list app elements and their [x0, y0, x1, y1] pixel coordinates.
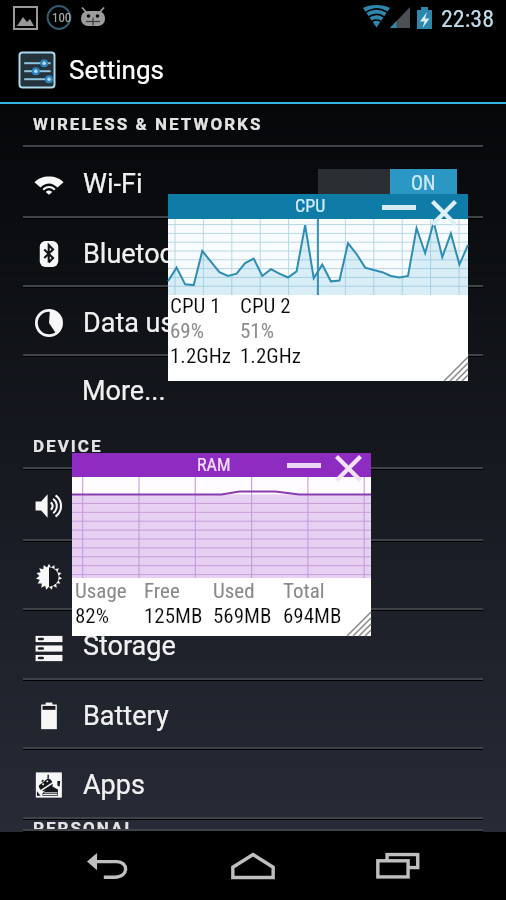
button[interactable]: Storage — [0, 611, 506, 681]
button[interactable]: Data usage — [0, 288, 506, 357]
button[interactable]: Close RAM monitor — [335, 455, 362, 482]
staticText: 694MB — [283, 604, 342, 629]
staticText: CPU 2 — [240, 294, 291, 319]
button[interactable]: Minimize RAM monitor — [287, 454, 321, 476]
staticText: Data usage — [83, 307, 219, 339]
staticText: CPU 1 — [170, 294, 221, 319]
staticText: WIRELESS & NETWORKS — [33, 114, 263, 134]
staticText: 1.2GHz — [240, 344, 301, 369]
staticText: 125MB — [144, 604, 203, 629]
staticText: 82% — [75, 604, 110, 629]
staticText: RAM — [197, 454, 231, 475]
button[interactable]: Close CPU monitor — [431, 200, 457, 226]
staticText: Sound — [83, 490, 160, 522]
staticText: 22:38 — [441, 5, 494, 33]
staticText: 1.2GHz — [170, 344, 231, 369]
staticText: Apps — [83, 769, 145, 801]
staticText: DEVICE — [33, 436, 103, 456]
staticText: Usage — [75, 579, 127, 604]
staticText: 100 — [52, 10, 72, 25]
button[interactable]: Back — [71, 832, 145, 900]
button[interactable]: More... — [0, 357, 506, 426]
button[interactable]: Apps — [0, 750, 506, 820]
staticText: Used — [213, 579, 255, 604]
button[interactable]: Wi-Fi — [0, 148, 506, 219]
staticText: Display — [83, 561, 171, 593]
staticText: ON — [411, 171, 436, 194]
staticText: Bluetooth — [83, 238, 199, 270]
staticText: PERSONAL — [33, 818, 136, 830]
staticText: Free — [144, 579, 180, 604]
button[interactable]: Display — [0, 542, 506, 611]
button[interactable]: Wi-Fi on — [318, 169, 457, 196]
staticText: Total — [283, 579, 325, 604]
staticText: More... — [82, 375, 166, 407]
staticText: Storage — [83, 630, 176, 662]
staticText: Settings — [69, 55, 164, 85]
button[interactable]: Settings — [0, 36, 506, 104]
button[interactable]: Recent apps — [361, 832, 435, 900]
button[interactable]: Minimize CPU monitor — [382, 196, 416, 218]
button[interactable]: Sound — [0, 470, 506, 542]
button[interactable]: CPU — [168, 194, 468, 381]
staticText: CPU — [295, 195, 326, 216]
staticText: 51% — [240, 319, 275, 344]
staticText: Battery — [83, 700, 169, 732]
button[interactable]: Bluetooth — [0, 219, 506, 288]
button[interactable]: RAM — [72, 453, 371, 636]
button[interactable]: Battery — [0, 681, 506, 750]
staticText: 569MB — [213, 604, 272, 629]
staticText: 69% — [170, 319, 205, 344]
staticText: Wi-Fi — [83, 168, 143, 200]
button[interactable]: Home — [216, 832, 290, 900]
